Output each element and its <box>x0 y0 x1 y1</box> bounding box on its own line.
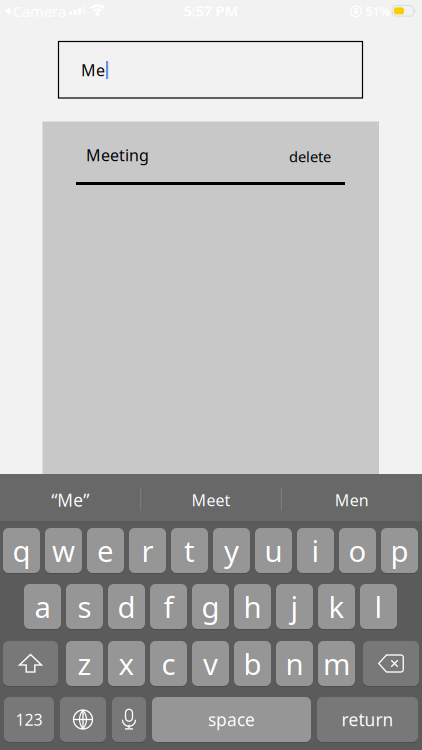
staticText: t <box>184 531 195 570</box>
button[interactable]: p <box>381 528 418 574</box>
button[interactable]: 123 <box>4 697 54 743</box>
staticText: 5:57 PM <box>183 1 238 20</box>
button[interactable]: j <box>276 584 313 630</box>
staticText: c <box>161 644 175 683</box>
staticText: j <box>290 587 298 626</box>
button[interactable]: b <box>234 641 271 687</box>
button[interactable]: h <box>234 584 271 630</box>
staticText: a <box>34 587 50 626</box>
staticText: Meeting <box>86 144 149 166</box>
button[interactable]: w <box>45 528 82 574</box>
staticText: l <box>374 587 382 626</box>
staticText: Meet <box>191 489 230 511</box>
button[interactable]: s <box>66 584 103 630</box>
button[interactable]: Dictate <box>112 697 146 743</box>
button[interactable]: i <box>297 528 334 574</box>
button[interactable]: v <box>192 641 229 687</box>
staticText: space <box>208 708 255 731</box>
button[interactable]: l <box>360 584 397 630</box>
button[interactable]: u <box>255 528 292 574</box>
button[interactable]: “Me” <box>0 474 141 521</box>
button[interactable]: Next keyboard <box>60 697 106 743</box>
staticText: Camera <box>13 1 66 21</box>
button[interactable]: a <box>24 584 61 630</box>
staticText: x <box>118 644 134 683</box>
staticText: q <box>12 531 30 570</box>
staticText: i <box>311 531 319 570</box>
button[interactable]: m <box>318 641 355 687</box>
button[interactable]: Meet <box>141 474 281 521</box>
staticText: r <box>141 531 153 570</box>
staticText: m <box>323 644 350 683</box>
staticText: g <box>201 587 219 626</box>
button[interactable]: Text entry <box>58 41 362 98</box>
staticText: z <box>77 644 91 683</box>
button[interactable]: n <box>276 641 313 687</box>
button[interactable]: f <box>150 584 187 630</box>
staticText: v <box>203 644 218 683</box>
staticText: h <box>243 587 261 626</box>
button[interactable]: x <box>108 641 145 687</box>
button[interactable]: Shift <box>3 641 58 687</box>
button[interactable]: d <box>108 584 145 630</box>
staticText: f <box>163 587 173 626</box>
button[interactable]: Delete <box>363 641 419 687</box>
button[interactable]: Meeting <box>42 121 272 179</box>
button[interactable]: delete <box>251 139 331 173</box>
button[interactable]: q <box>3 528 40 574</box>
staticText: p <box>390 531 408 570</box>
staticText: delete <box>289 147 331 166</box>
staticText: 123 <box>15 709 42 730</box>
staticText: u <box>264 531 282 570</box>
staticText: Me <box>81 59 105 81</box>
staticText: d <box>117 587 135 626</box>
button[interactable]: o <box>339 528 376 574</box>
staticText: n <box>285 644 303 683</box>
staticText: 51% <box>365 3 390 19</box>
staticText: o <box>348 531 366 570</box>
button[interactable]: z <box>66 641 103 687</box>
button[interactable]: r <box>129 528 166 574</box>
staticText: y <box>224 531 239 570</box>
staticText: return <box>341 708 393 731</box>
button[interactable]: t <box>171 528 208 574</box>
staticText: b <box>243 644 261 683</box>
staticText: Men <box>335 489 369 511</box>
button[interactable]: space <box>152 697 311 743</box>
button[interactable]: return <box>317 697 418 743</box>
staticText: k <box>328 587 344 626</box>
button[interactable]: g <box>192 584 229 630</box>
button[interactable]: y <box>213 528 250 574</box>
button[interactable]: e <box>87 528 124 574</box>
staticText: w <box>52 531 75 570</box>
button[interactable]: Men <box>281 474 422 521</box>
button[interactable]: c <box>150 641 187 687</box>
button[interactable]: k <box>318 584 355 630</box>
button[interactable]: Back to Camera <box>4 1 66 21</box>
staticText: e <box>97 531 114 570</box>
staticText: “Me” <box>51 488 89 511</box>
staticText: s <box>77 587 91 626</box>
